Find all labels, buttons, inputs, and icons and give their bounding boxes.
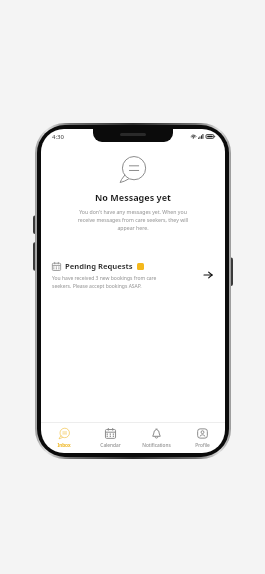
staticText: No Messages yet: [95, 191, 171, 203]
button[interactable]: Calendar: [87, 423, 133, 453]
other: Open pending requests: [201, 268, 215, 282]
staticText: Notifications: [142, 442, 171, 449]
button[interactable]: Notifications: [133, 423, 179, 453]
staticText: Inbox: [57, 442, 71, 449]
staticText: Calendar: [100, 442, 121, 449]
staticText: Profile: [195, 442, 210, 449]
staticText: You don't have any messages yet. When yo…: [73, 208, 193, 231]
staticText: Pending Requests: [65, 261, 133, 271]
staticText: You have received 3 new bookings from ca…: [52, 275, 173, 289]
button[interactable]: Profile: [179, 423, 225, 453]
button[interactable]: Inbox: [41, 423, 87, 453]
staticText: 4:30: [52, 133, 64, 141]
button[interactable]: Pending Requests: [41, 257, 225, 293]
